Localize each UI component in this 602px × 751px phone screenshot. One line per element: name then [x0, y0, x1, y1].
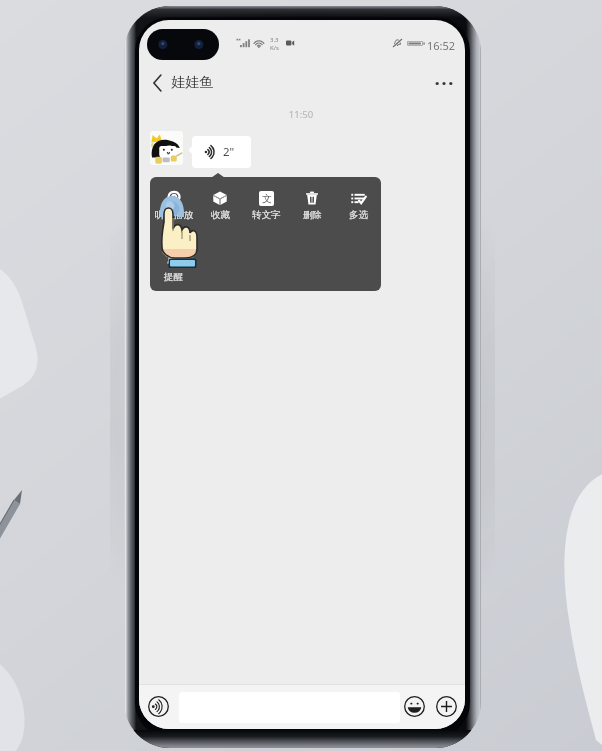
staticText: 听筒播放 — [155, 209, 193, 221]
staticText: K/s — [270, 44, 279, 52]
button[interactable]: Voice input — [148, 696, 169, 717]
button[interactable]: 2" — [192, 136, 251, 168]
staticText: 3.3 — [270, 36, 279, 44]
staticText: 收藏 — [211, 209, 230, 221]
button[interactable]: 提醒 — [150, 252, 196, 283]
button[interactable]: Back — [142, 64, 172, 102]
button[interactable]: 收藏 — [197, 190, 243, 221]
button[interactable]: More — [436, 696, 457, 717]
staticText: 删除 — [303, 209, 322, 221]
staticText: 多选 — [349, 209, 368, 221]
button[interactable]: Avatar — [150, 131, 183, 165]
button[interactable]: More options — [427, 64, 461, 102]
staticText: 16:52 — [427, 38, 456, 53]
staticText: 提醒 — [164, 271, 183, 283]
staticText: 转文字 — [252, 209, 281, 221]
button[interactable]: 听筒播放 — [150, 190, 197, 221]
button[interactable]: Emoji — [404, 696, 425, 717]
button[interactable]: 文 — [243, 190, 289, 221]
button[interactable]: 多选 — [335, 190, 381, 221]
staticText: 2" — [223, 144, 235, 160]
staticText: 娃娃鱼 — [171, 74, 213, 92]
staticText: 11:50 — [139, 108, 464, 121]
staticText: 文 — [262, 192, 272, 205]
button[interactable]: 删除 — [289, 190, 335, 221]
